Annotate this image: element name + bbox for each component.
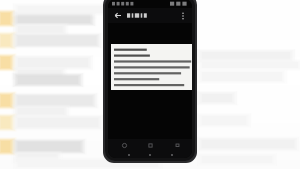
button[interactable]: Recents xyxy=(166,139,188,151)
button[interactable]: Back xyxy=(113,139,135,151)
button[interactable]: More options xyxy=(177,10,188,21)
button[interactable]: Back xyxy=(112,10,123,21)
button[interactable]: Home xyxy=(139,139,161,151)
button[interactable] xyxy=(111,44,192,90)
